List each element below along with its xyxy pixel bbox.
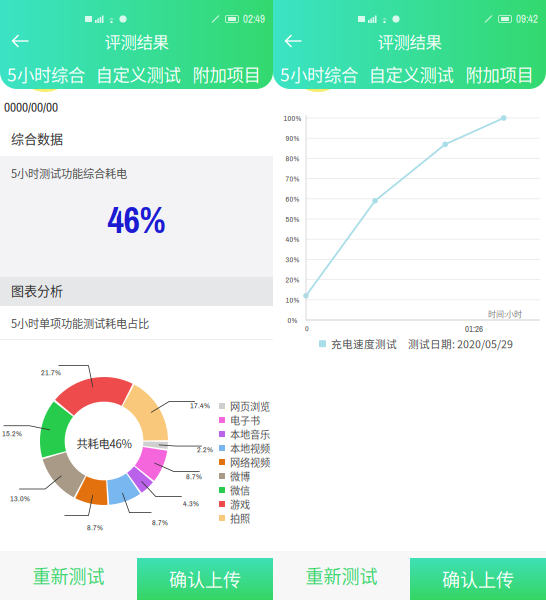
staticText: 70% [285,173,299,184]
staticText: 微信 [230,483,250,497]
staticText: 图表分析 [11,280,63,299]
staticText: 30% [285,254,299,265]
staticText: 4.3% [183,498,199,509]
staticText: 100% [283,113,301,123]
button[interactable]: Back [0,27,40,55]
staticText: 自定义测试 [95,61,180,87]
staticText: 附加项目 [465,61,533,87]
staticText: 5小时综合 [280,61,358,87]
button[interactable]: 确认上传 [410,558,546,600]
button[interactable]: Back [273,27,313,55]
staticText: 确认上传 [442,566,514,592]
staticText: 自定义测试 [368,61,453,87]
staticText: 21.7% [41,367,61,378]
staticText: 网络视频 [230,455,270,469]
staticText: 重新测试 [305,562,377,589]
button[interactable]: 重新测试 [273,551,410,600]
button[interactable]: 自定义测试 [365,61,457,87]
staticText: 评测结果 [104,29,168,53]
staticText: 13.0% [10,493,30,504]
staticText: 微博 [230,469,250,483]
staticText: 01:26 [465,323,483,335]
button[interactable]: 5小时综合 [0,61,92,87]
button[interactable]: 重新测试 [0,551,137,600]
staticText: 90% [285,133,299,144]
staticText: 15.2% [2,428,22,439]
staticText: 时间:小时 [488,308,522,320]
staticText: 本地视频 [230,441,270,455]
staticText: 综合数据 [11,128,63,147]
staticText: 附加项目 [192,61,260,87]
staticText: 2.2% [197,444,213,455]
staticText: 5小时综合 [7,61,85,87]
staticText: 0% [287,315,297,325]
staticText: 46% [107,196,165,244]
staticText: 02:49 [243,12,265,26]
staticText: 80% [285,153,299,164]
staticText: 09:42 [516,12,538,26]
staticText: 50% [285,214,299,224]
button[interactable]: 确认上传 [137,558,273,600]
staticText: 共耗电46% [76,435,131,451]
staticText: 8.7% [152,517,168,528]
staticText: 测试日期: 2020/05/29 [408,336,513,351]
staticText: 20% [285,274,299,285]
staticText: 10% [285,294,299,305]
staticText: 电子书 [230,413,260,427]
staticText: 拍照 [230,511,250,525]
staticText: 0000/00/00 [4,98,58,116]
staticText: 充电速度测试 [331,336,397,351]
staticText: 确认上传 [169,566,241,592]
staticText: 40% [285,234,299,245]
staticText: 网页浏览 [230,399,270,413]
button[interactable]: 附加项目 [182,61,271,87]
staticText: 0 [305,323,309,334]
staticText: 5小时单项功能测试耗电占比 [11,315,149,331]
button[interactable]: 附加项目 [455,61,544,87]
staticText: 本地音乐 [230,427,270,441]
staticText: 重新测试 [32,562,104,589]
staticText: 游戏 [230,497,250,511]
staticText: 评测结果 [377,29,441,53]
staticText: 60% [285,193,299,204]
staticText: 17.4% [190,400,210,411]
button[interactable]: 自定义测试 [92,61,184,87]
staticText: 8.7% [186,471,202,482]
button[interactable]: 5小时综合 [273,61,365,87]
staticText: 8.7% [87,522,103,533]
staticText: 5小时测试功能综合耗电 [11,165,127,181]
